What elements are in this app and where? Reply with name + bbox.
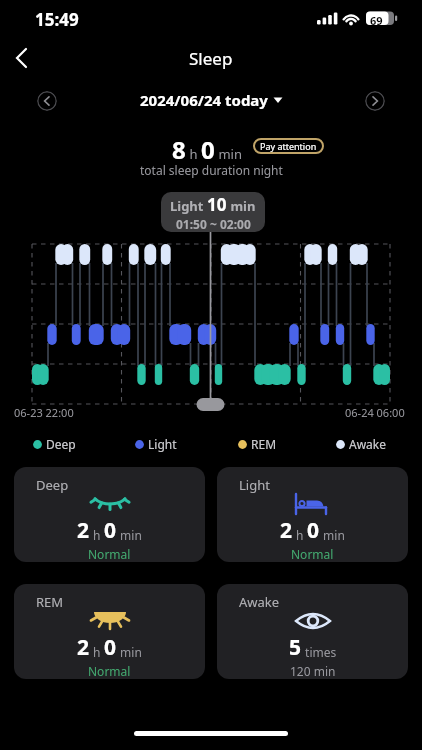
staticText: Pay attention (260, 140, 317, 152)
staticText: 5 (289, 633, 302, 662)
staticText: 69 (370, 13, 383, 28)
staticText: Deep (36, 476, 69, 494)
staticText: min (215, 145, 242, 163)
staticText: Light (239, 476, 270, 494)
staticText: Normal (88, 663, 131, 679)
staticText: total sleep duration night (140, 162, 283, 178)
staticText: 2 (77, 516, 90, 545)
staticText: 2 (280, 516, 293, 545)
staticText: REM (251, 436, 277, 452)
button[interactable]: Deep (14, 467, 205, 562)
staticText: 120 min (290, 663, 336, 679)
staticText: 0 (307, 516, 320, 545)
staticText: min (117, 527, 142, 543)
staticText: h (90, 644, 104, 660)
staticText: times (302, 644, 337, 660)
button[interactable] (37, 91, 57, 111)
staticText: 15:49 (35, 8, 79, 31)
staticText: min (227, 197, 256, 215)
staticText: 8 (172, 133, 186, 166)
staticText: Light (148, 436, 177, 452)
staticText: Light (170, 197, 207, 215)
button[interactable] (8, 44, 40, 72)
staticText: h (186, 145, 201, 163)
staticText: min (320, 527, 345, 543)
staticText: 06-23 22:00 (14, 405, 74, 420)
staticText: Sleep (189, 47, 233, 70)
staticText: 0 (104, 633, 117, 662)
staticText: Normal (88, 546, 131, 562)
staticText: min (117, 644, 142, 660)
button[interactable] (365, 91, 385, 111)
staticText: 2 (77, 633, 90, 662)
staticText: 2024/06/24 today (140, 90, 268, 110)
staticText: 0 (104, 516, 117, 545)
button[interactable]: Light (217, 467, 408, 562)
staticText: REM (36, 593, 64, 611)
staticText: h (293, 527, 307, 543)
staticText: 10 (207, 193, 227, 216)
staticText: Awake (239, 593, 280, 611)
button[interactable]: Awake (217, 584, 408, 679)
staticText: Awake (349, 436, 387, 452)
staticText: 0 (201, 133, 215, 166)
button[interactable]: 2024/06/24 today (140, 90, 283, 110)
button[interactable]: Pay attention (253, 138, 324, 154)
staticText: Deep (46, 436, 76, 452)
staticText: h (90, 527, 104, 543)
staticText: Normal (291, 546, 334, 562)
staticText: 06-24 06:00 (345, 405, 405, 420)
staticText: 01:50 ~ 02:00 (176, 216, 251, 232)
button[interactable]: REM (14, 584, 205, 679)
